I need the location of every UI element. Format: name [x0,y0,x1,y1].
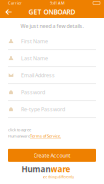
staticText: Email Address [21,71,55,79]
staticText: Humanware [8,133,30,139]
button[interactable]: Email Address [8,67,96,84]
staticText: ware [50,164,70,174]
staticText: Terms of Service. [30,133,61,139]
staticText: 9:41 AM [50,0,65,6]
staticText: Last Name [21,54,48,62]
staticText: see things differently [42,175,73,179]
staticText: First Name [21,37,48,45]
staticText: Human [21,164,50,174]
button[interactable]: Re-type Password [8,101,96,118]
button[interactable]: First Name [8,33,96,50]
button[interactable]: Back [0,6,17,18]
button[interactable]: Password [8,84,96,101]
staticText: We just need a few details. [20,22,83,30]
staticText: click to agree [8,127,31,132]
staticText: Carrier [8,0,22,6]
button[interactable]: Create Account [8,149,96,162]
staticText: Password [21,88,45,96]
staticText: Re-type Password [21,105,65,113]
staticText: GET ONBOARD [28,8,75,16]
staticText: Create Account [33,152,70,159]
button[interactable]: Terms of Service. [30,133,61,139]
button[interactable]: Last Name [8,50,96,67]
